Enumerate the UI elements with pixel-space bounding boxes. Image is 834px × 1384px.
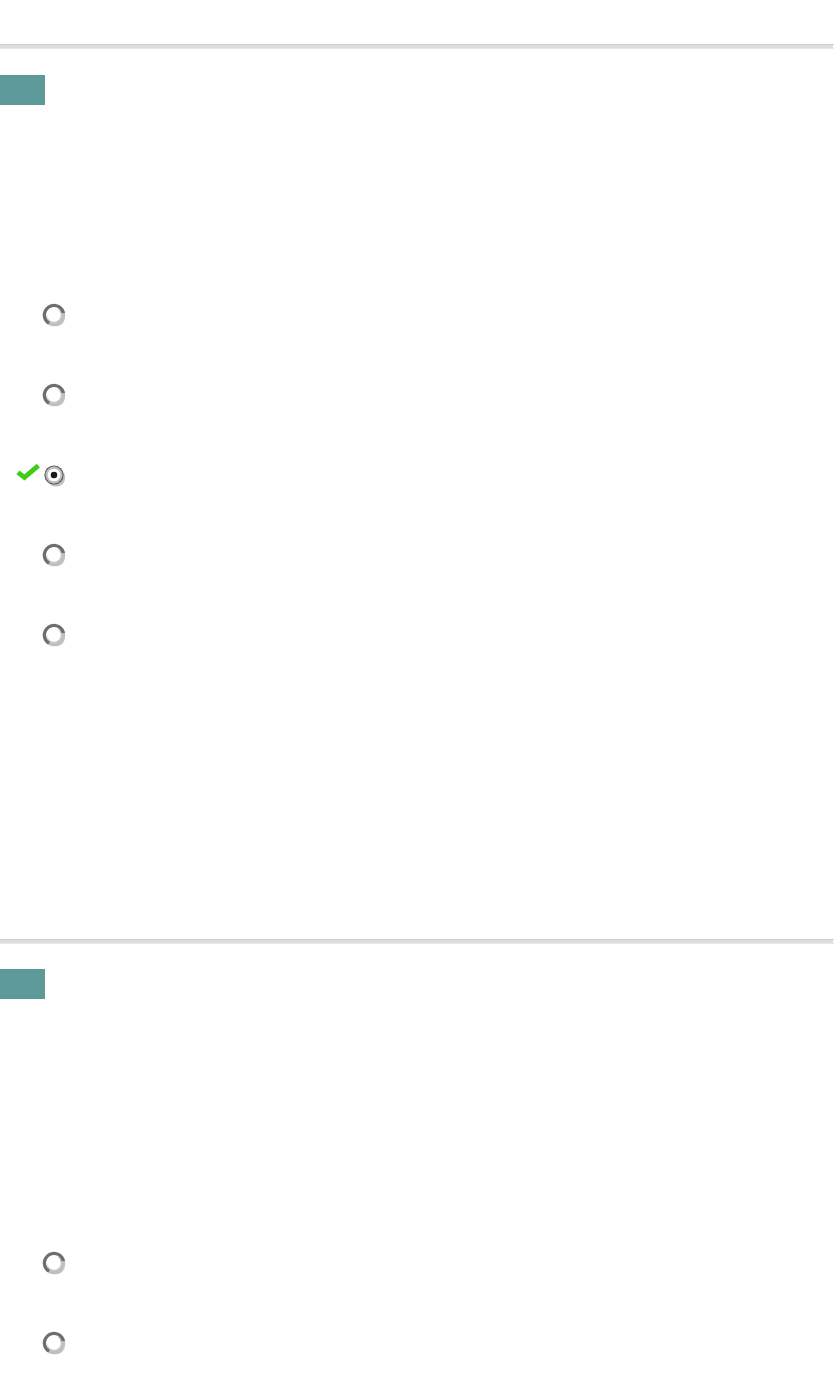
button[interactable]: Option 4 xyxy=(42,543,66,567)
button[interactable]: Option 2 xyxy=(42,383,66,407)
button[interactable]: Option 3 (selected) xyxy=(42,463,66,487)
button[interactable]: Option 6 xyxy=(42,1251,66,1275)
button[interactable]: Option 5 xyxy=(42,623,66,647)
button[interactable]: Option 1 xyxy=(42,303,66,327)
button[interactable]: Option 7 xyxy=(42,1331,66,1355)
